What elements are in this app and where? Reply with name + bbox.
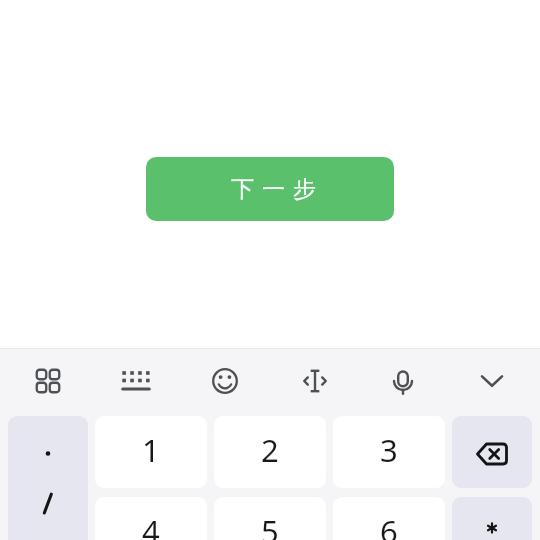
- button[interactable]: [464, 353, 520, 409]
- button[interactable]: [197, 353, 253, 409]
- button[interactable]: [287, 353, 343, 409]
- staticText: 1: [142, 429, 160, 471]
- button[interactable]: [108, 353, 164, 409]
- button[interactable]: 5: [214, 497, 326, 540]
- button[interactable]: 1: [95, 416, 207, 488]
- staticText: 4: [142, 510, 160, 540]
- button[interactable]: 2: [214, 416, 326, 488]
- button[interactable]: [20, 353, 76, 409]
- staticText: 3: [380, 429, 398, 471]
- button[interactable]: [452, 416, 532, 488]
- staticText: 6: [380, 510, 398, 540]
- button[interactable]: [375, 353, 431, 409]
- button[interactable]: 下一步: [146, 157, 394, 221]
- button[interactable]: 3: [333, 416, 445, 488]
- button[interactable]: [452, 497, 532, 540]
- staticText: 2: [261, 429, 279, 471]
- staticText: 下一步: [227, 175, 320, 204]
- staticText: 5: [261, 510, 279, 540]
- button[interactable]: [8, 416, 88, 540]
- button[interactable]: 6: [333, 497, 445, 540]
- button[interactable]: 4: [95, 497, 207, 540]
